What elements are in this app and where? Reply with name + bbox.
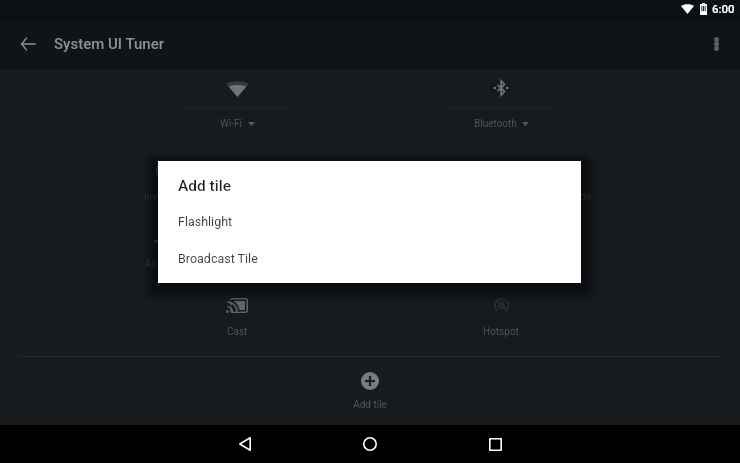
staticText: Flashlight <box>178 214 233 229</box>
button[interactable]: Alarm <box>499 223 631 275</box>
button[interactable]: Broadcast Tile <box>158 240 581 277</box>
staticText: Inversion <box>144 191 185 203</box>
staticText: Wi-Fi <box>220 118 243 130</box>
staticText: Cast <box>227 326 248 338</box>
button[interactable]: Navigate up <box>8 24 48 64</box>
staticText: Add tile <box>353 399 387 411</box>
staticText: Airplane <box>145 258 182 270</box>
staticText: Work mode <box>540 191 591 203</box>
button[interactable]: Rotation <box>368 156 500 208</box>
button[interactable]: Bluetooth <box>435 74 567 136</box>
staticText: System UI Tuner <box>54 35 164 53</box>
button[interactable]: Back <box>215 425 275 463</box>
button[interactable]: Data <box>236 156 368 208</box>
staticText: Bluetooth <box>474 118 517 130</box>
staticText: Add tile <box>178 177 231 195</box>
button[interactable]: Work mode <box>499 156 631 208</box>
button[interactable]: Home <box>340 425 400 463</box>
staticText: Broadcast Tile <box>178 251 258 266</box>
button[interactable]: Wi-Fi <box>171 74 303 136</box>
button[interactable]: Hotspot <box>435 292 567 343</box>
button[interactable]: Add tile <box>325 372 415 411</box>
staticText: 6:00 <box>712 2 735 15</box>
button[interactable]: More options <box>696 24 736 64</box>
button[interactable]: Location <box>236 223 368 275</box>
button[interactable]: Inversion <box>98 156 230 208</box>
button[interactable]: Cast <box>171 292 303 343</box>
staticText: Hotspot <box>483 326 519 338</box>
button[interactable]: Airplane <box>97 223 229 275</box>
button[interactable]: Recent apps <box>465 425 525 463</box>
button[interactable]: Flashlight <box>158 203 581 240</box>
